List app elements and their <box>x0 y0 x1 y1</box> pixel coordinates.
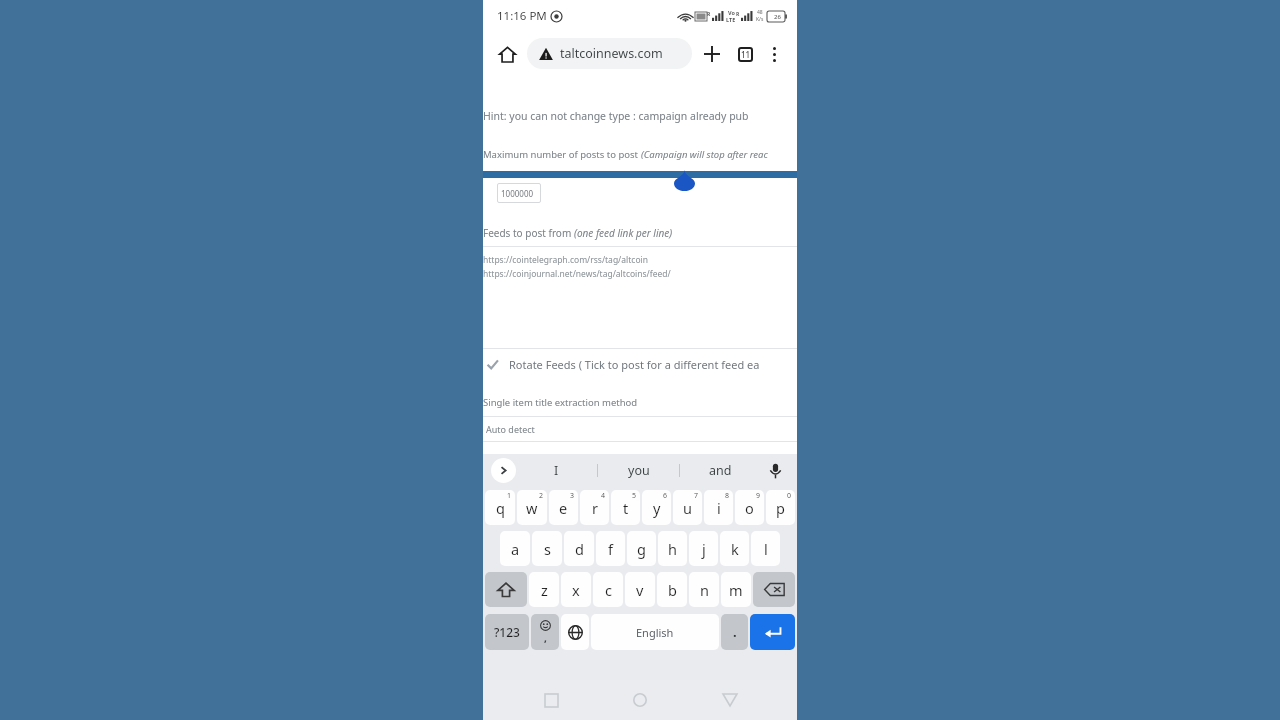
button[interactable]: Tabs <box>730 39 760 69</box>
button[interactable]: l <box>751 531 780 566</box>
staticText: ?123 <box>494 624 520 640</box>
button[interactable]: Shift <box>485 572 527 607</box>
button[interactable]: Home <box>493 40 521 68</box>
staticText: Maximum number of posts to post <box>483 148 641 161</box>
staticText: 11 <box>741 49 751 60</box>
button[interactable]: Emoji <box>531 614 559 650</box>
staticText: 0 <box>787 491 792 501</box>
staticText: 1000000 <box>501 188 534 199</box>
staticText: Hint: you can not change type : campaign… <box>483 109 749 123</box>
staticText: b <box>668 580 677 600</box>
staticText: 26 <box>774 13 781 21</box>
button[interactable]: y <box>642 490 671 525</box>
button[interactable]: Expand toolbar <box>491 458 516 483</box>
staticText: , <box>544 631 547 645</box>
staticText: Single item title extraction method <box>483 396 638 409</box>
button[interactable]: Voice input <box>761 457 789 485</box>
staticText: Rotate Feeds ( Tick to post for a differ… <box>509 357 760 372</box>
button[interactable]: Period <box>721 614 748 650</box>
button[interactable]: s <box>532 531 562 566</box>
button[interactable]: a <box>500 531 530 566</box>
button[interactable]: m <box>721 572 751 607</box>
button[interactable]: k <box>720 531 749 566</box>
staticText: n <box>700 580 709 600</box>
staticText: i <box>717 498 721 518</box>
staticText: Feeds to post from <box>483 226 574 240</box>
button[interactable]: and <box>680 454 761 487</box>
button[interactable]: Backspace <box>753 572 795 607</box>
button[interactable]: Rotate Feeds ( Tick to post for a differ… <box>483 357 797 372</box>
staticText: k <box>731 539 739 559</box>
button[interactable]: New tab <box>697 39 727 69</box>
button[interactable]: p <box>766 490 795 525</box>
button[interactable]: Enter <box>750 614 795 650</box>
staticText: taltcoinnews.com <box>560 45 663 62</box>
staticText: R <box>736 11 740 18</box>
staticText: u <box>683 498 692 518</box>
staticText: 48 <box>757 9 763 16</box>
button[interactable]: z <box>529 572 559 607</box>
button[interactable]: English <box>591 614 719 650</box>
staticText: t <box>623 498 629 518</box>
button[interactable]: o <box>735 490 764 525</box>
button[interactable]: c <box>593 572 623 607</box>
staticText: 1 <box>507 491 512 501</box>
staticText: j <box>702 539 706 559</box>
button[interactable]: v <box>625 572 655 607</box>
button[interactable]: taltcoinnews.com <box>527 38 692 69</box>
staticText: 3 <box>570 491 575 501</box>
staticText: Auto detect <box>486 423 535 435</box>
button[interactable]: e <box>549 490 578 525</box>
staticText: https://cointelegraph.com/rss/tag/altcoi… <box>483 254 648 266</box>
button[interactable]: j <box>689 531 718 566</box>
button[interactable]: h <box>658 531 687 566</box>
button[interactable]: Recent apps <box>529 680 573 720</box>
staticText: 8 <box>725 491 730 501</box>
button[interactable]: Auto detect <box>483 423 797 435</box>
button[interactable]: g <box>627 531 656 566</box>
staticText: (one feed link per line) <box>574 226 673 240</box>
button[interactable]: More options <box>761 41 787 67</box>
button[interactable]: f <box>596 531 625 566</box>
staticText: https://coinjournal.net/news/tag/altcoin… <box>483 268 671 280</box>
button[interactable]: Home <box>618 680 662 720</box>
button[interactable]: n <box>689 572 719 607</box>
staticText: l <box>764 539 768 559</box>
staticText: 2 <box>539 491 544 501</box>
staticText: e <box>559 498 568 518</box>
staticText: o <box>745 498 754 518</box>
button[interactable]: you <box>598 454 679 487</box>
staticText: 7 <box>694 491 699 501</box>
button[interactable]: t <box>611 490 640 525</box>
staticText: K/s <box>756 16 764 23</box>
staticText: h <box>668 539 677 559</box>
button[interactable]: Change language <box>561 614 589 650</box>
button[interactable]: q <box>485 490 515 525</box>
button[interactable]: x <box>561 572 591 607</box>
staticText: 9 <box>756 491 761 501</box>
button[interactable]: u <box>673 490 702 525</box>
button[interactable]: r <box>580 490 609 525</box>
staticText: (Campaign will stop after reac <box>641 148 768 161</box>
button[interactable]: I <box>516 454 597 487</box>
staticText: y <box>653 498 661 518</box>
staticText: 11:16 PM <box>497 8 547 24</box>
button[interactable]: w <box>517 490 547 525</box>
button[interactable]: Symbols <box>485 614 529 650</box>
button[interactable]: 1000000 <box>497 183 541 203</box>
button[interactable]: Back <box>708 680 752 720</box>
staticText: 4 <box>601 491 606 501</box>
staticText: LTE <box>726 16 736 23</box>
staticText: z <box>541 580 548 600</box>
button[interactable]: d <box>564 531 594 566</box>
staticText: Vo <box>728 9 735 16</box>
staticText: x <box>572 580 580 600</box>
button[interactable]: i <box>704 490 733 525</box>
staticText: m <box>729 580 743 600</box>
staticText: a <box>511 539 520 559</box>
button[interactable]: b <box>657 572 687 607</box>
staticText: w <box>526 498 538 518</box>
staticText: English <box>636 625 674 640</box>
staticText: R <box>707 11 711 18</box>
staticText: and <box>709 462 732 479</box>
